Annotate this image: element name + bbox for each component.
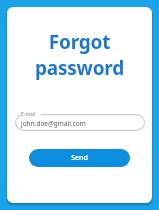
staticText: Send (71, 153, 88, 163)
staticText: Forgot password (7, 29, 152, 81)
staticText: E-mail (21, 111, 36, 118)
button[interactable]: Send (29, 149, 130, 167)
staticText: john.doe@gmail.com (21, 119, 86, 128)
button[interactable]: E-mail (15, 114, 145, 131)
